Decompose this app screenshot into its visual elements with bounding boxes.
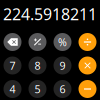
button[interactable]: Percent: [53, 33, 71, 51]
button[interactable]: 4: [3, 80, 21, 98]
button[interactable]: Plus Minus: [28, 33, 46, 51]
staticText: 9: [59, 58, 65, 73]
button[interactable]: Divide: [78, 33, 96, 51]
staticText: 4: [9, 82, 15, 96]
staticText: 6: [59, 82, 65, 96]
button[interactable]: 8: [28, 56, 46, 74]
staticText: %: [58, 35, 67, 49]
button[interactable]: 5: [28, 80, 46, 98]
staticText: 224.5918211: [3, 3, 97, 25]
staticText: 5: [34, 82, 40, 96]
button[interactable]: Delete: [3, 33, 21, 51]
button[interactable]: 6: [53, 80, 71, 98]
button[interactable]: 9: [53, 56, 71, 74]
staticText: 7: [9, 58, 15, 73]
button[interactable]: Multiply: [78, 56, 96, 74]
button[interactable]: 7: [3, 56, 21, 74]
staticText: 8: [34, 58, 40, 73]
button[interactable]: Minus: [78, 80, 96, 98]
